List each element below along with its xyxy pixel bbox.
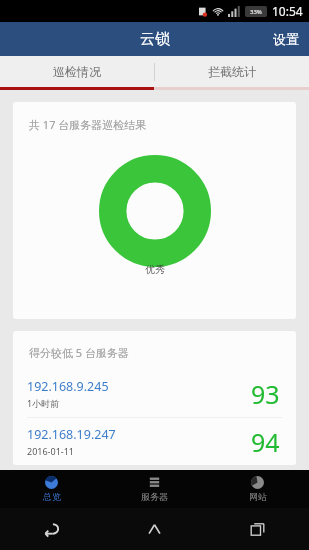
- button[interactable]: 共 17 台服务器巡检结果: [13, 102, 296, 319]
- staticText: 192.168.19.247: [27, 426, 116, 443]
- staticText: 优秀: [145, 263, 165, 276]
- button[interactable]: Recents: [206, 508, 309, 550]
- staticText: 云锁: [140, 30, 170, 49]
- button[interactable]: Back: [0, 508, 103, 550]
- staticText: 1小时前: [27, 397, 60, 409]
- staticText: 拦截统计: [208, 64, 256, 79]
- staticText: 网站: [249, 491, 267, 502]
- button[interactable]: 拦截统计: [155, 56, 309, 87]
- staticText: 94: [251, 425, 280, 459]
- staticText: 总览: [43, 491, 61, 502]
- staticText: 93: [251, 377, 280, 411]
- staticText: 10:54: [272, 3, 303, 19]
- button[interactable]: 网站: [206, 470, 309, 508]
- button[interactable]: 服务器: [103, 470, 206, 508]
- staticText: 服务器: [141, 491, 168, 502]
- button[interactable]: 设置: [263, 25, 309, 53]
- staticText: 192.168.9.245: [27, 378, 109, 395]
- staticText: 得分较低 5 台服务器: [29, 345, 130, 360]
- staticText: 设置: [273, 31, 299, 47]
- button[interactable]: 巡检情况: [0, 56, 154, 87]
- button[interactable]: 192.168.9.245: [13, 370, 296, 417]
- button[interactable]: Home: [103, 508, 206, 550]
- staticText: 巡检情况: [53, 64, 101, 79]
- button[interactable]: 总览: [0, 470, 103, 508]
- button[interactable]: 192.168.19.247: [13, 418, 296, 465]
- staticText: 共 17 台服务器巡检结果: [29, 117, 147, 132]
- staticText: 33%: [250, 8, 262, 16]
- staticText: 2016-01-11: [27, 445, 74, 457]
